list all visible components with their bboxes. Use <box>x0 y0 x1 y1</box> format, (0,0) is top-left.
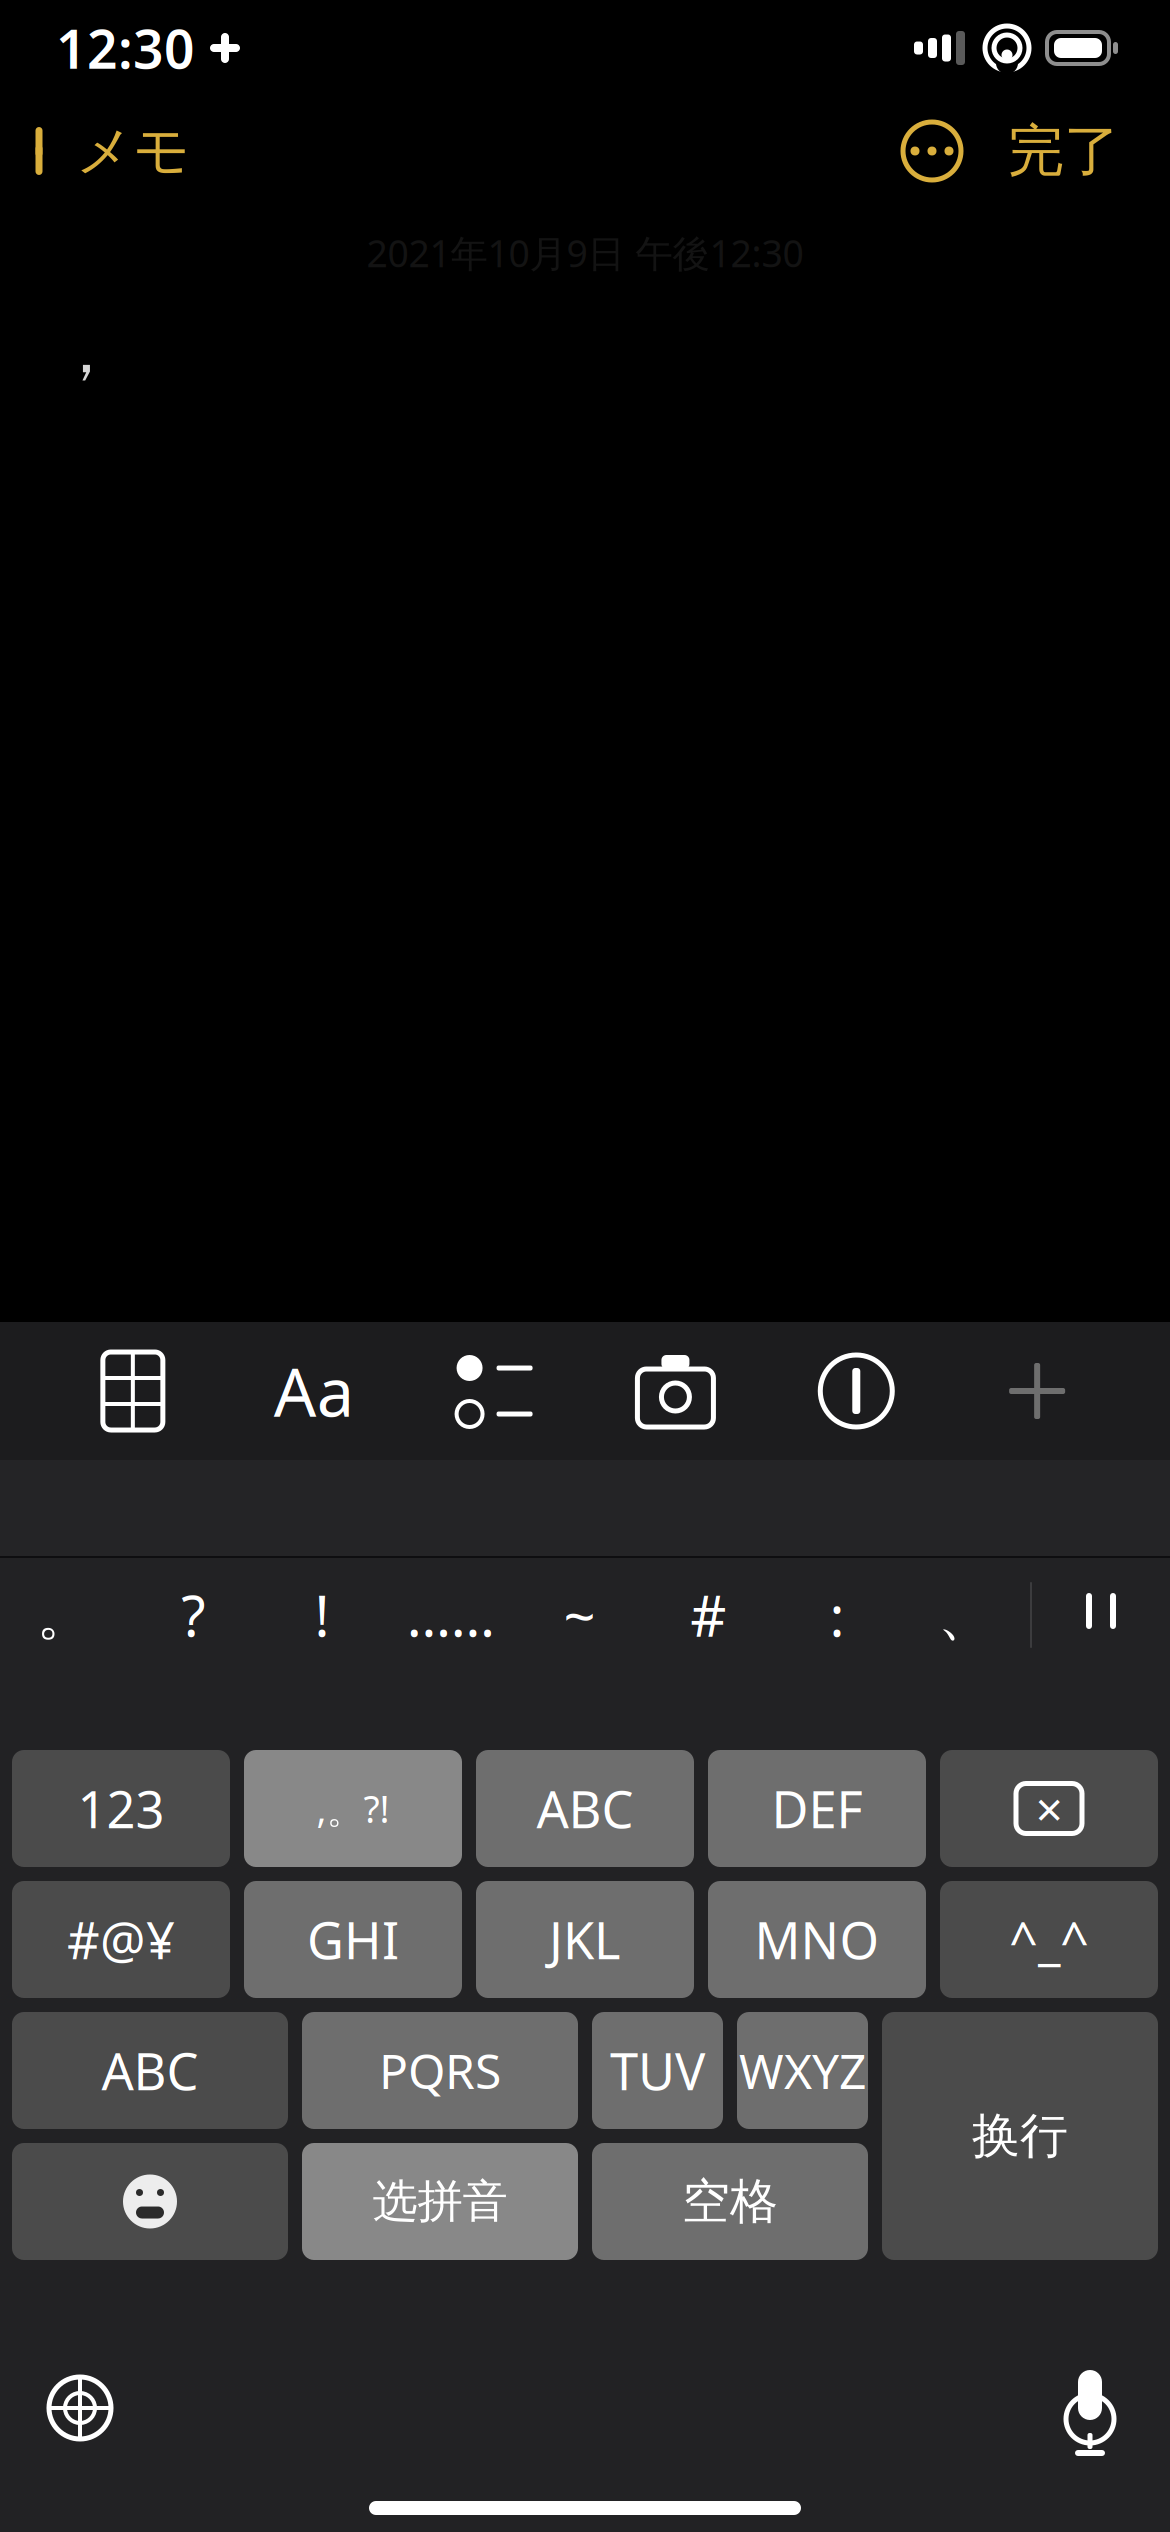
button[interactable]: 选拼音 <box>302 2143 578 2260</box>
staticText: ， <box>54 312 118 390</box>
staticText: 选拼音 <box>372 2174 507 2229</box>
button[interactable]: カメラ <box>627 1343 723 1439</box>
button[interactable]: ABC <box>12 2012 288 2129</box>
button[interactable]: ,。?! <box>244 1750 462 1867</box>
staticText: JKL <box>549 1906 621 1973</box>
button[interactable]: : <box>772 1558 901 1672</box>
button[interactable]: ? <box>129 1558 258 1672</box>
staticText: ~ <box>563 1578 595 1652</box>
staticText: 2021年10月9日 午後12:30 <box>366 228 803 278</box>
button[interactable]: JKL <box>476 1881 694 1998</box>
staticText: Aa <box>274 1347 354 1435</box>
staticText: ! <box>314 1578 329 1652</box>
button[interactable]: 絵文字 <box>12 2143 288 2260</box>
button[interactable]: 、 <box>901 1558 1030 1672</box>
staticText: 空格 <box>682 2172 778 2231</box>
button[interactable]: WXYZ <box>737 2012 868 2129</box>
staticText: 。 <box>36 1581 92 1649</box>
staticText: 完了 <box>1008 117 1120 185</box>
staticText: 、 <box>938 1581 994 1649</box>
staticText: PQRS <box>379 2039 501 2102</box>
button[interactable]: 書式 <box>266 1343 362 1439</box>
button[interactable]: マークアップ <box>808 1343 904 1439</box>
button[interactable]: …… <box>386 1558 515 1672</box>
button[interactable]: 完了 <box>978 101 1150 201</box>
staticText: ,。?! <box>316 1784 389 1833</box>
button[interactable]: キーボードを閉じる <box>1032 1558 1170 1672</box>
staticText: 123 <box>77 1775 164 1842</box>
button[interactable]: 。 <box>0 1558 129 1672</box>
button[interactable]: 閉じる <box>989 1343 1085 1439</box>
staticText: メモ <box>76 117 190 185</box>
button[interactable]: GHI <box>244 1881 462 1998</box>
staticText: TUV <box>610 2037 705 2104</box>
button[interactable]: チェックリスト <box>447 1343 543 1439</box>
button[interactable]: 音声入力 <box>1030 2348 1150 2468</box>
button[interactable]: 空格 <box>592 2143 868 2260</box>
button[interactable]: 詳細 <box>886 105 978 197</box>
staticText: #@¥ <box>67 1906 175 1973</box>
button[interactable]: 削除 <box>940 1750 1158 1867</box>
button[interactable]: ~ <box>515 1558 644 1672</box>
button[interactable]: 言語を切り替え <box>20 2348 140 2468</box>
button[interactable]: メモ <box>0 101 210 201</box>
staticText: # <box>690 1578 726 1652</box>
staticText: GHI <box>307 1906 399 1973</box>
staticText: 换行 <box>972 2106 1068 2165</box>
staticText: ABC <box>101 2037 198 2104</box>
button[interactable]: PQRS <box>302 2012 578 2129</box>
button[interactable]: ^_^ <box>940 1881 1158 1998</box>
staticText: DEF <box>771 1775 862 1842</box>
staticText: 12:30 <box>56 13 195 83</box>
button[interactable]: 表 <box>85 1343 181 1439</box>
staticText: ABC <box>536 1775 633 1842</box>
staticText: : <box>829 1578 844 1652</box>
staticText: ? <box>181 1578 205 1652</box>
staticText: MNO <box>754 1906 879 1973</box>
staticText: ^_^ <box>1009 1906 1089 1973</box>
button[interactable]: MNO <box>708 1881 926 1998</box>
button[interactable]: TUV <box>592 2012 723 2129</box>
button[interactable]: ABC <box>476 1750 694 1867</box>
staticText: × <box>1035 1777 1062 1840</box>
button[interactable]: DEF <box>708 1750 926 1867</box>
staticText: WXYZ <box>739 2039 866 2102</box>
button[interactable]: 123 <box>12 1750 230 1867</box>
button[interactable]: ! <box>257 1558 386 1672</box>
staticText: …… <box>407 1578 495 1652</box>
button[interactable]: #@¥ <box>12 1881 230 1998</box>
button[interactable]: 换行 <box>882 2012 1158 2260</box>
button[interactable]: # <box>644 1558 773 1672</box>
